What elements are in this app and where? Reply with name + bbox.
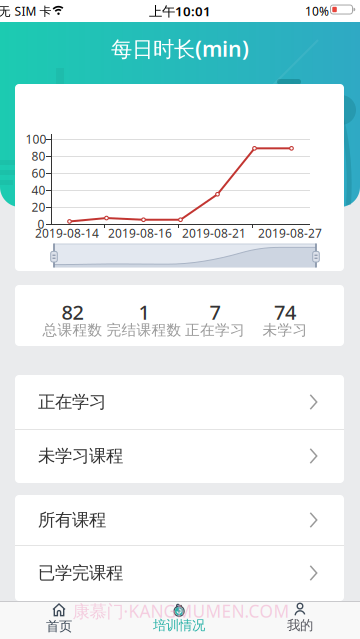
- button[interactable]: 已学完课程: [15, 545, 344, 601]
- staticText: 82: [61, 299, 83, 325]
- staticText: 2019-08-21: [182, 225, 246, 241]
- button[interactable]: 首页: [4, 601, 114, 639]
- staticText: 每日时长(min): [111, 34, 249, 63]
- staticText: 完结课程数: [106, 321, 181, 339]
- staticText: 7: [209, 299, 220, 325]
- staticText: 2019-08-27: [258, 225, 322, 241]
- staticText: 我的: [287, 617, 313, 633]
- staticText: 0: [37, 216, 44, 232]
- staticText: 上午10:01: [149, 2, 211, 20]
- button[interactable]: 我的: [245, 601, 355, 639]
- staticText: 已学完课程: [38, 562, 123, 584]
- staticText: 总课程数: [42, 321, 102, 339]
- staticText: 20: [31, 199, 45, 215]
- button[interactable]: 未学习课程: [15, 429, 344, 483]
- staticText: 培训情况: [153, 617, 205, 633]
- staticText: 10%: [305, 3, 329, 19]
- button[interactable]: 正在学习: [15, 375, 344, 429]
- staticText: 40: [31, 182, 45, 198]
- staticText: 100: [25, 131, 46, 147]
- staticText: 80: [31, 148, 45, 164]
- staticText: 康慕门·KANGMUMEN.COM: [72, 599, 289, 622]
- staticText: 74: [274, 299, 296, 325]
- button[interactable]: 所有课程: [15, 495, 344, 545]
- staticText: 未学习: [262, 321, 307, 339]
- staticText: 所有课程: [38, 509, 106, 531]
- staticText: 正在学习: [38, 391, 106, 413]
- staticText: 2019-08-14: [35, 225, 99, 241]
- staticText: 正在学习: [185, 321, 245, 339]
- staticText: 未学习课程: [38, 445, 123, 467]
- button[interactable]: 培训情况: [124, 601, 234, 639]
- staticText: 无 SIM 卡: [0, 3, 51, 19]
- staticText: 1: [138, 299, 149, 325]
- staticText: 2019-08-16: [108, 225, 172, 241]
- staticText: 60: [31, 165, 45, 181]
- staticText: 首页: [46, 618, 72, 634]
